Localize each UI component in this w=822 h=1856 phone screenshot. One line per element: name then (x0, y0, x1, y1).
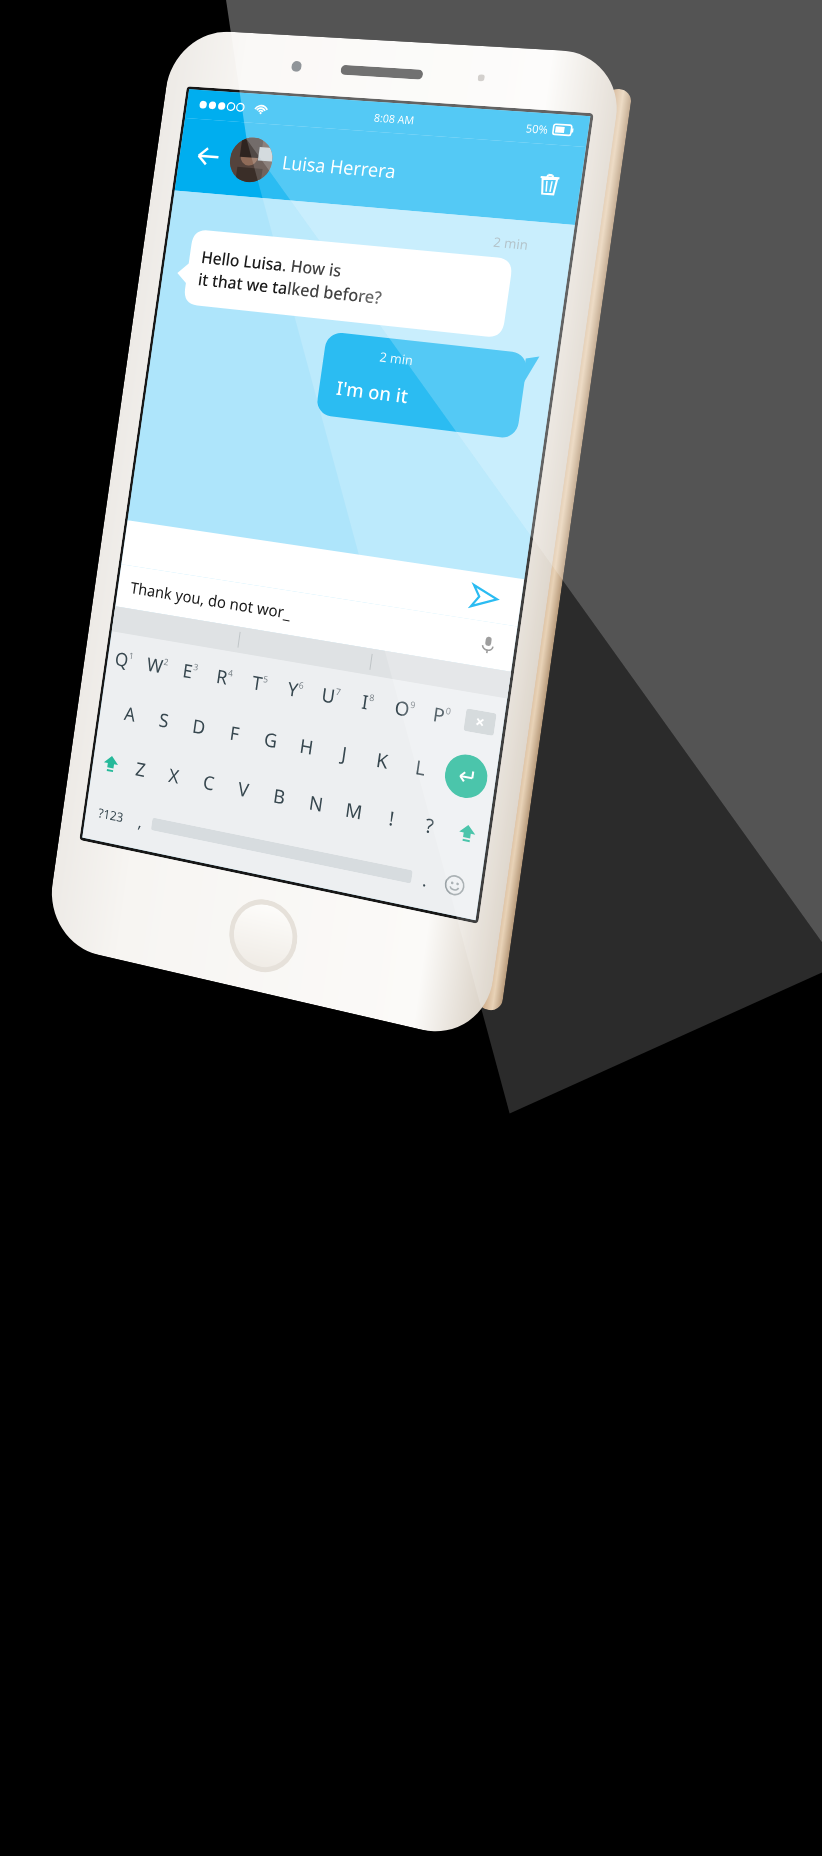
button[interactable]: K (359, 730, 405, 791)
staticText: ? (423, 812, 436, 840)
staticText: P (431, 701, 447, 729)
staticText: I'm on it (335, 375, 410, 409)
staticText: G (262, 726, 279, 754)
staticText: 8:08 AM (373, 110, 416, 127)
staticText: X (167, 762, 181, 790)
staticText: 2 min (378, 347, 415, 369)
button[interactable]: Enter (442, 751, 490, 802)
staticText: 3 (193, 660, 200, 673)
button[interactable]: S (143, 691, 185, 750)
staticText: 2 min (492, 232, 530, 254)
button[interactable]: ! (369, 787, 415, 849)
staticText: V (236, 776, 251, 803)
button[interactable]: T (238, 654, 281, 713)
staticText: K (375, 746, 390, 775)
button[interactable]: G (248, 710, 292, 770)
button[interactable]: Q (104, 631, 144, 689)
button[interactable]: A (109, 685, 150, 743)
button[interactable]: U (309, 666, 353, 726)
button[interactable]: Shift (451, 813, 484, 853)
button[interactable]: Backspace (463, 708, 497, 736)
staticText: L (414, 754, 427, 782)
staticText: N (307, 789, 325, 818)
staticText: I (360, 688, 371, 716)
button[interactable] (370, 649, 511, 698)
staticText: T (250, 669, 264, 697)
button[interactable]: Z (120, 740, 161, 799)
button[interactable]: R (204, 648, 246, 707)
staticText: D (191, 713, 207, 741)
button[interactable]: Contact photo (227, 136, 275, 184)
button[interactable]: P (419, 685, 465, 746)
staticText: 8 (369, 691, 376, 704)
button[interactable]: E (170, 642, 211, 701)
staticText: U (320, 681, 337, 710)
button[interactable] (238, 627, 372, 675)
staticText: M (344, 796, 365, 826)
staticText: Thank you, do not wor_ (129, 577, 477, 654)
staticText: Luisa Herrera (280, 150, 398, 184)
button[interactable]: Delete conversation (529, 165, 568, 202)
staticText: S (157, 707, 171, 734)
button[interactable]: M (331, 780, 376, 842)
button[interactable]: , (125, 794, 155, 847)
button[interactable]: W (137, 637, 178, 695)
staticText: H (298, 732, 316, 761)
staticText: A (123, 700, 138, 728)
button[interactable]: V (222, 760, 265, 819)
button[interactable]: F (212, 704, 256, 763)
button[interactable]: . (408, 851, 441, 907)
button[interactable]: D (177, 697, 220, 756)
button[interactable] (112, 606, 240, 652)
staticText: 5 (263, 672, 270, 685)
staticText: Q (113, 646, 130, 673)
button[interactable]: Shift (96, 745, 126, 782)
staticText: Hello Luisa. How is it that we talked be… (197, 246, 387, 309)
staticText: 2 (163, 655, 170, 667)
staticText: W (145, 651, 165, 679)
staticText: B (272, 782, 287, 811)
button[interactable]: Space (151, 817, 413, 884)
button[interactable]: Back (190, 138, 227, 175)
staticText: 7 (335, 685, 342, 698)
button[interactable]: N (294, 773, 339, 834)
button[interactable]: Send (462, 574, 508, 621)
staticText: 50% (525, 120, 549, 137)
staticText: ! (387, 805, 397, 832)
staticText: E (181, 657, 195, 684)
staticText: 6 (298, 678, 305, 691)
button[interactable]: Voice input (474, 631, 502, 659)
button[interactable]: C (188, 753, 230, 812)
button[interactable]: X (153, 746, 195, 806)
staticText: ?123 (97, 804, 124, 826)
staticText: , (137, 810, 144, 833)
button[interactable]: Hello Luisa. How is it that we talked be… (173, 228, 513, 338)
staticText: Y (286, 676, 300, 703)
button[interactable]: Emoji (434, 856, 475, 914)
staticText: O (393, 694, 411, 723)
staticText: . (421, 868, 429, 892)
staticText: 4 (227, 666, 235, 679)
button[interactable]: O (382, 678, 427, 739)
button[interactable]: Y (274, 660, 317, 720)
staticText: 0 (445, 704, 453, 717)
button[interactable]: ?123 (90, 787, 132, 843)
staticText: J (340, 740, 349, 767)
button[interactable]: L (397, 737, 443, 799)
staticText: R (215, 663, 229, 691)
button[interactable]: H (285, 717, 329, 777)
button[interactable]: Thank you, do not wor_ (128, 566, 503, 669)
staticText: 9 (410, 698, 417, 711)
button[interactable]: B (257, 766, 302, 827)
staticText: F (228, 720, 241, 747)
staticText: 1 (128, 649, 135, 661)
staticText: C (201, 769, 217, 797)
button[interactable]: I (346, 672, 390, 733)
button[interactable]: 2 min (315, 331, 540, 441)
button[interactable]: ? (407, 795, 453, 857)
staticText: Z (134, 756, 147, 783)
button[interactable]: Home (224, 893, 302, 979)
button[interactable]: J (322, 723, 367, 784)
